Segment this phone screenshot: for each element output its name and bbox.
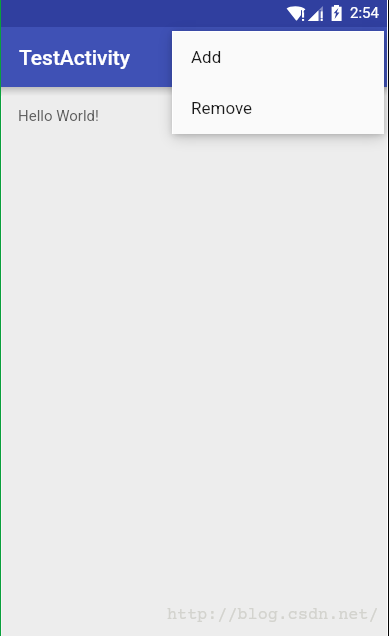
staticText: Add xyxy=(191,47,222,67)
other: Wi-Fi, no internet xyxy=(286,5,306,21)
staticText: Remove xyxy=(191,98,253,118)
other: Mobile signal, no internet xyxy=(307,5,323,21)
staticText: Hello World! xyxy=(18,107,99,125)
staticText: TestActivity xyxy=(19,46,131,71)
staticText: 2:54 xyxy=(350,4,379,22)
button[interactable]: Add xyxy=(172,31,384,82)
other: Battery charging xyxy=(331,5,342,21)
button[interactable]: Remove xyxy=(172,82,384,133)
staticText: http://blog.csdn.net/ xyxy=(167,606,379,625)
